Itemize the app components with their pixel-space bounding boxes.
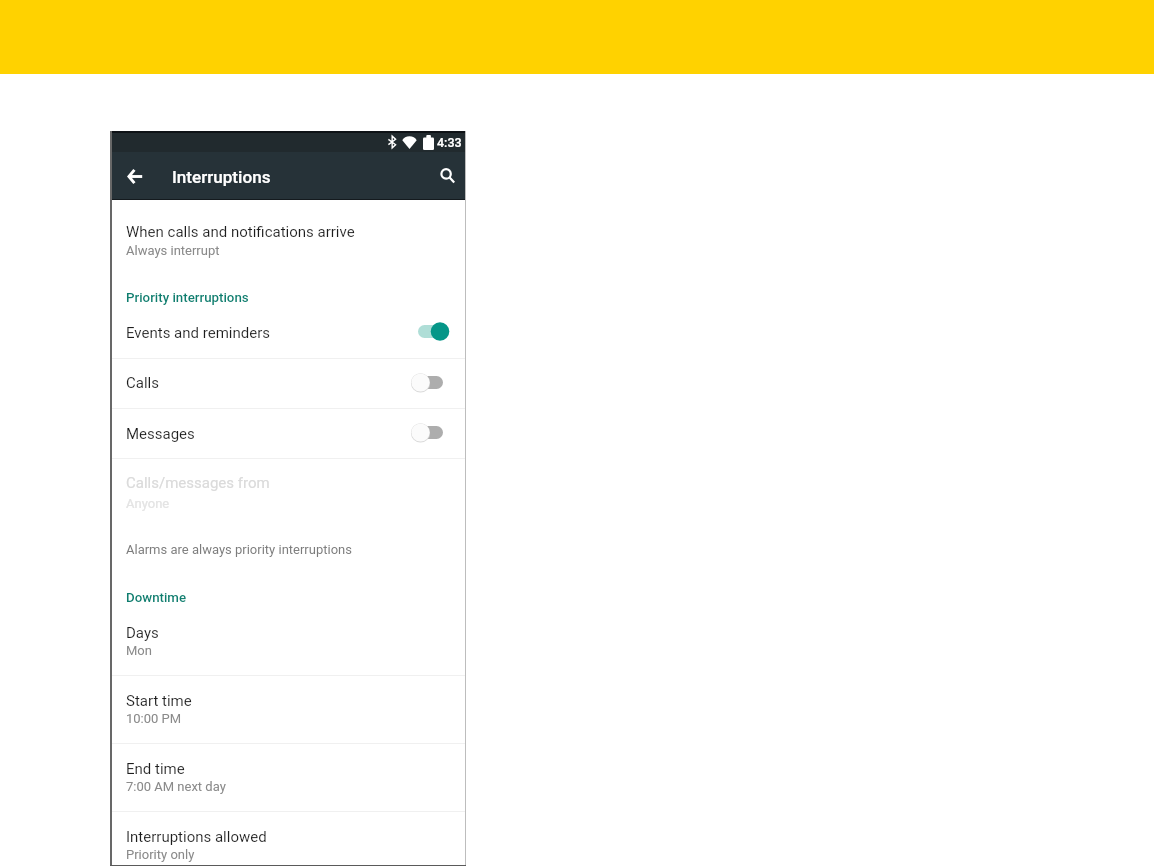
staticText: Anyone — [126, 496, 170, 511]
staticText: Mon — [126, 643, 152, 658]
button[interactable]: Messages, off — [111, 408, 465, 458]
button[interactable]: Calls, off — [111, 358, 465, 408]
staticText: Downtime — [126, 590, 187, 606]
button[interactable]: Start time — [111, 675, 465, 743]
staticText: Calls — [126, 374, 159, 392]
staticText: Always interrupt — [126, 243, 220, 258]
staticText: Alarms are always priority interruptions — [126, 542, 352, 557]
staticText: When calls and notifications arrive — [126, 223, 355, 241]
staticText: Messages — [126, 425, 195, 443]
button[interactable]: End time — [111, 743, 465, 811]
staticText: Calls/messages from — [126, 474, 270, 492]
button[interactable]: Events and reminders, on — [111, 308, 465, 358]
staticText: Days — [126, 624, 159, 642]
staticText: 10:00 PM — [126, 711, 182, 726]
staticText: Start time — [126, 692, 192, 710]
button[interactable]: Search — [428, 157, 466, 195]
button[interactable]: When calls and notifications arrive — [111, 199, 465, 308]
staticText: Priority only — [126, 847, 195, 862]
button[interactable]: Days — [111, 614, 465, 675]
staticText: 7:00 AM next day — [126, 779, 226, 794]
staticText: Interruptions allowed — [126, 828, 267, 846]
button[interactable]: Back — [116, 157, 154, 195]
staticText: 4:33 — [437, 135, 462, 150]
staticText: End time — [126, 760, 185, 778]
staticText: Priority interruptions — [126, 290, 249, 306]
staticText: Events and reminders — [126, 324, 270, 342]
button[interactable]: Calls/messages from — [111, 458, 465, 518]
button[interactable]: Interruptions allowed — [111, 811, 465, 866]
staticText: Interruptions — [172, 167, 271, 187]
